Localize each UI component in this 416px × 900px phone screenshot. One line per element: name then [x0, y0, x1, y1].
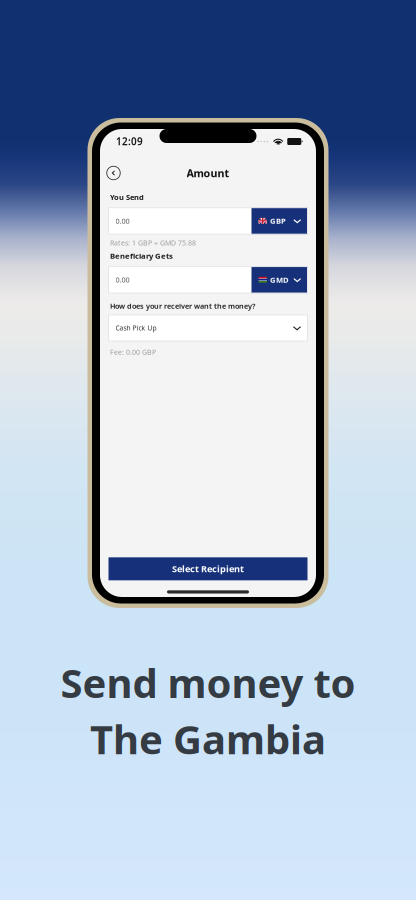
staticText: 0.00	[115, 275, 129, 285]
button[interactable]: Cash Pick Up	[108, 315, 307, 341]
button[interactable]: Select Recipient	[108, 557, 307, 580]
button[interactable]: Back	[103, 163, 123, 183]
staticText: Select Recipient	[172, 562, 244, 575]
staticText: 0.00	[115, 216, 129, 226]
button[interactable]: GMD	[251, 267, 307, 293]
staticText: Amount	[186, 166, 229, 180]
staticText: Fee: 0.00 GBP	[110, 347, 156, 357]
staticText: GMD	[270, 275, 289, 285]
staticText: Cash Pick Up	[115, 323, 156, 332]
staticText: The Gambia	[90, 712, 326, 765]
staticText: You Send	[110, 192, 144, 202]
staticText: How does your receiver want the money?	[110, 301, 255, 311]
staticText: Send money to	[60, 656, 355, 709]
staticText: Beneficiary Gets	[110, 251, 173, 261]
staticText: Rates: 1 GBP = GMD 75.88	[110, 238, 196, 248]
staticText: GBP	[270, 216, 286, 226]
button[interactable]: GBP	[251, 208, 307, 234]
staticText: 12:09	[116, 135, 143, 148]
